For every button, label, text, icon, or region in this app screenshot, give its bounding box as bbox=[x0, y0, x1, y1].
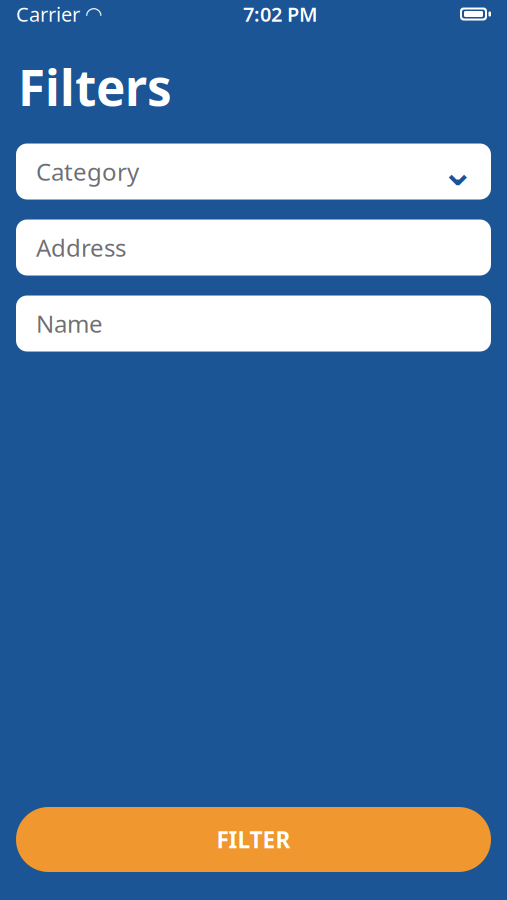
button[interactable]: Address bbox=[16, 219, 491, 275]
staticText: ◠ bbox=[86, 3, 101, 25]
button[interactable]: Name bbox=[16, 295, 491, 351]
staticText: ⌄ bbox=[441, 149, 475, 194]
staticText: Name bbox=[36, 308, 103, 339]
button[interactable]: FILTER bbox=[16, 807, 491, 872]
staticText: FILTER bbox=[216, 824, 290, 854]
button[interactable]: Category bbox=[16, 143, 491, 199]
staticText: 7:02 PM bbox=[243, 1, 318, 27]
staticText: Category bbox=[36, 156, 139, 187]
staticText: Carrier bbox=[16, 1, 80, 27]
staticText: Filters bbox=[18, 54, 172, 119]
staticText: Address bbox=[36, 232, 126, 263]
